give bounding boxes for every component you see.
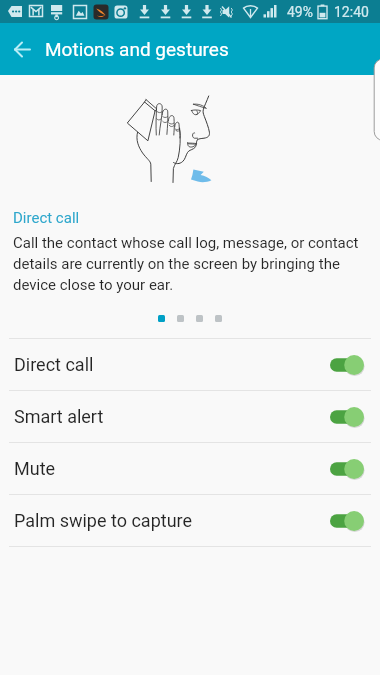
staticText: 49% bbox=[287, 4, 313, 20]
button[interactable]: Page 1 bbox=[158, 315, 165, 322]
button[interactable]: Direct call bbox=[0, 339, 380, 390]
staticText: 12:40 bbox=[334, 4, 369, 20]
button[interactable]: Page 4 bbox=[215, 315, 222, 322]
staticText: Direct call bbox=[14, 354, 94, 375]
button[interactable]: Page 3 bbox=[196, 315, 203, 322]
button[interactable]: Page 2 bbox=[177, 315, 184, 322]
button[interactable]: Palm swipe to capture bbox=[0, 495, 380, 546]
button[interactable]: Smart alert bbox=[0, 391, 380, 442]
staticText: Motions and gestures bbox=[45, 38, 229, 60]
button[interactable]: Navigate up bbox=[0, 23, 45, 75]
staticText: Palm swipe to capture bbox=[14, 510, 193, 531]
staticText: Call the contact whose call log, message… bbox=[13, 234, 367, 293]
button[interactable]: Mute bbox=[0, 443, 380, 494]
staticText: Smart alert bbox=[14, 406, 104, 427]
staticText: Mute bbox=[14, 458, 56, 479]
staticText: Direct call bbox=[13, 209, 80, 227]
